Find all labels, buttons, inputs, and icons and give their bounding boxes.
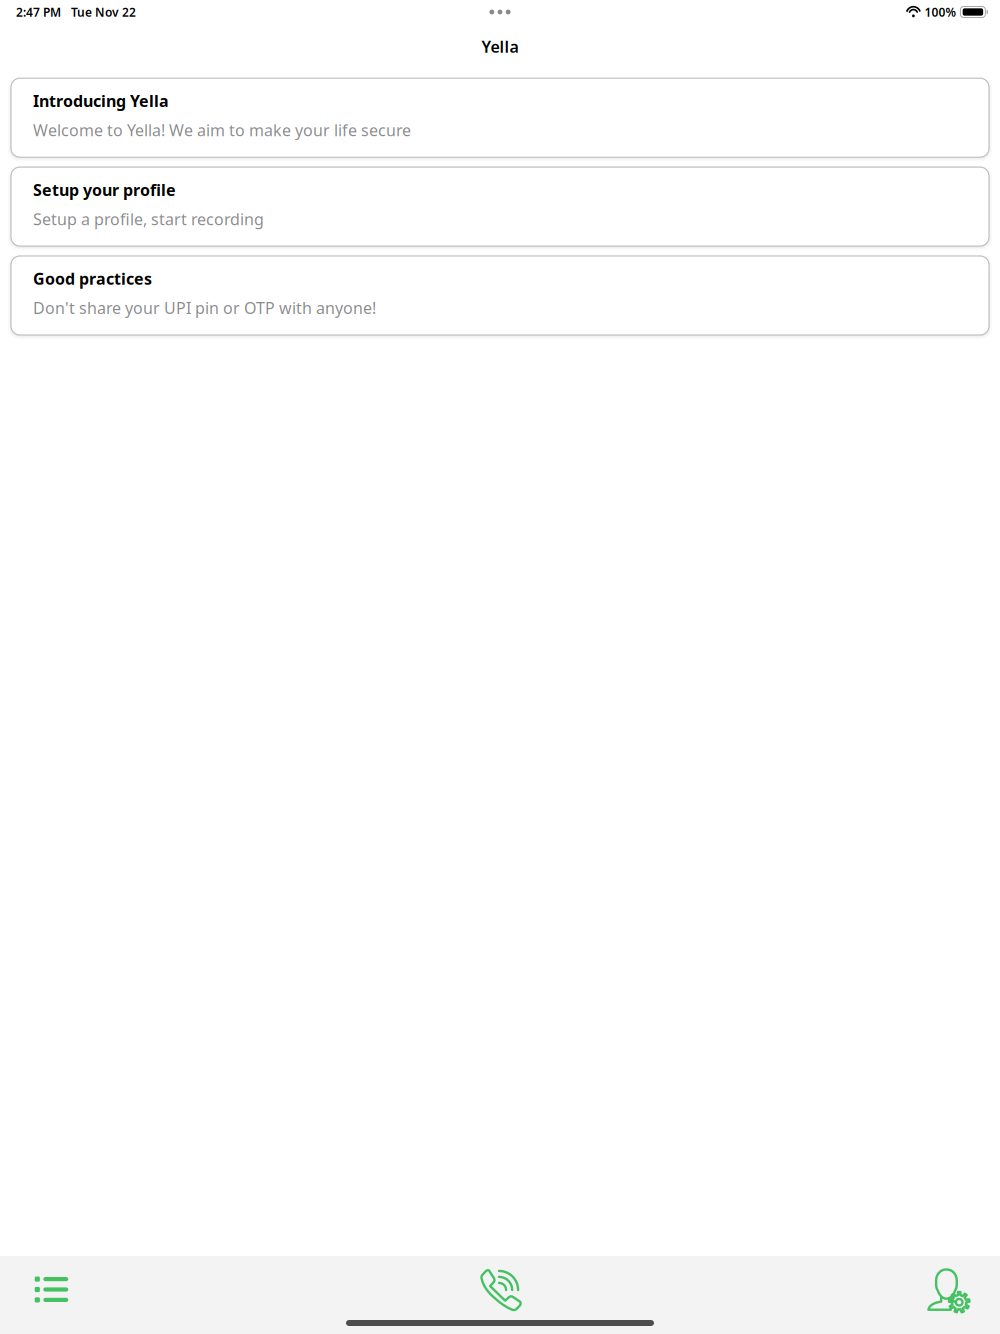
staticText: Setup your profile <box>33 179 176 200</box>
staticText: 100% <box>924 4 956 20</box>
staticText: Yella <box>481 36 518 57</box>
staticText: Welcome to Yella! We aim to make your li… <box>33 119 411 141</box>
button[interactable]: Calls <box>445 1256 555 1323</box>
staticText: 2:47 PM <box>16 4 61 20</box>
staticText: Introducing Yella <box>33 90 169 111</box>
button[interactable]: Setup your profile <box>11 167 989 246</box>
button[interactable]: Good practices <box>11 256 989 335</box>
button[interactable]: Recordings <box>0 1256 103 1323</box>
staticText: Setup a profile, start recording <box>33 208 264 229</box>
staticText: Good practices <box>33 268 152 289</box>
button[interactable]: Introducing Yella <box>11 78 989 157</box>
staticText: Tue Nov 22 <box>71 4 136 20</box>
button[interactable]: Profile settings <box>897 1256 1000 1323</box>
staticText: Don't share your UPI pin or OTP with any… <box>33 297 376 318</box>
